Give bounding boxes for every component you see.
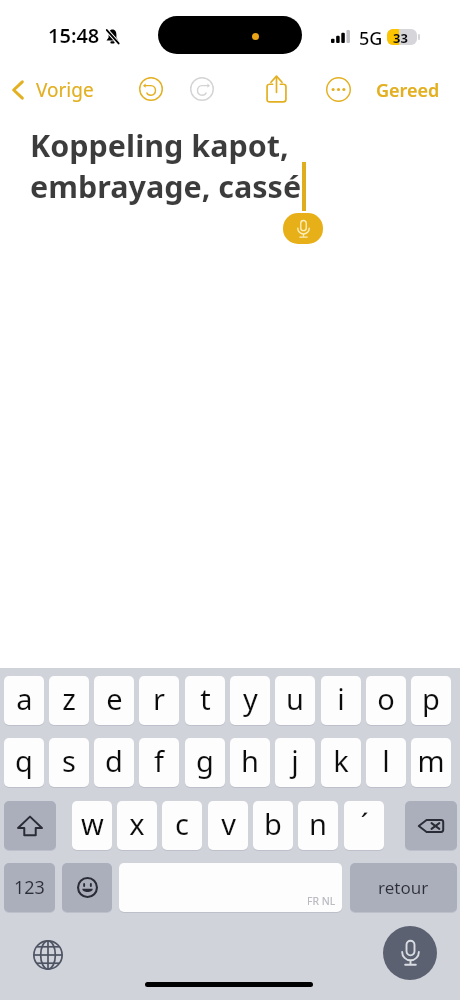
- button[interactable]: y: [230, 676, 270, 725]
- staticText: v: [221, 804, 236, 843]
- button[interactable]: Undo: [129, 67, 173, 111]
- staticText: 15:48: [48, 22, 100, 49]
- staticText: x: [129, 804, 145, 843]
- button[interactable]: o: [366, 676, 406, 725]
- staticText: l: [382, 741, 390, 780]
- button[interactable]: i: [321, 676, 361, 725]
- staticText: r: [153, 679, 165, 718]
- button[interactable]: Redo: [180, 67, 224, 111]
- button[interactable]: Backspace: [405, 801, 457, 850]
- button[interactable]: m: [411, 738, 451, 787]
- staticText: a: [16, 679, 33, 718]
- button[interactable]: 123: [4, 863, 55, 912]
- button[interactable]: t: [185, 676, 225, 725]
- button[interactable]: r: [139, 676, 179, 725]
- staticText: y: [243, 679, 258, 718]
- button[interactable]: z: [49, 676, 89, 725]
- staticText: 5G: [359, 26, 383, 51]
- staticText: e: [106, 679, 123, 718]
- staticText: retour: [378, 876, 429, 899]
- staticText: d: [105, 741, 123, 780]
- button[interactable]: s: [49, 738, 89, 787]
- staticText: s: [62, 741, 76, 780]
- staticText: j: [291, 741, 299, 780]
- button[interactable]: j: [275, 738, 315, 787]
- staticText: z: [62, 679, 76, 718]
- button[interactable]: e: [94, 676, 134, 725]
- button[interactable]: f: [139, 738, 179, 787]
- button[interactable]: retour: [350, 863, 457, 912]
- button[interactable]: k: [321, 738, 361, 787]
- staticText: w: [81, 804, 104, 843]
- staticText: embrayage, cassé: [30, 165, 302, 207]
- button[interactable]: l: [366, 738, 406, 787]
- staticText: ´: [360, 804, 369, 843]
- button[interactable]: Space: [119, 863, 342, 912]
- button[interactable]: Vorige: [0, 69, 104, 111]
- staticText: q: [15, 741, 33, 780]
- button[interactable]: h: [230, 738, 270, 787]
- staticText: f: [154, 741, 164, 780]
- button[interactable]: b: [253, 801, 293, 850]
- staticText: 123: [14, 875, 45, 900]
- staticText: k: [333, 741, 349, 780]
- button[interactable]: c: [162, 801, 202, 850]
- staticText: Gereed: [376, 78, 440, 103]
- staticText: u: [286, 679, 304, 718]
- button[interactable]: Dictate: [383, 926, 437, 980]
- button[interactable]: u: [275, 676, 315, 725]
- staticText: g: [196, 741, 214, 780]
- staticText: t: [200, 679, 211, 718]
- staticText: Koppeling kapot,: [30, 124, 289, 166]
- button[interactable]: g: [185, 738, 225, 787]
- staticText: c: [175, 804, 189, 843]
- staticText: Vorige: [36, 77, 94, 103]
- button[interactable]: Dictation: [283, 213, 323, 244]
- button[interactable]: n: [298, 801, 338, 850]
- staticText: b: [264, 804, 282, 843]
- button[interactable]: ´: [344, 801, 384, 850]
- button[interactable]: Change keyboard: [28, 935, 68, 975]
- button[interactable]: Shift: [4, 801, 56, 850]
- button[interactable]: d: [94, 738, 134, 787]
- button[interactable]: p: [411, 676, 451, 725]
- button[interactable]: Gereed: [368, 70, 448, 110]
- button[interactable]: x: [117, 801, 157, 850]
- button[interactable]: Emoji: [62, 863, 112, 912]
- staticText: p: [422, 679, 440, 718]
- button[interactable]: More options: [316, 67, 360, 111]
- staticText: n: [309, 804, 327, 843]
- staticText: 33: [393, 29, 408, 45]
- button[interactable]: v: [208, 801, 248, 850]
- staticText: h: [241, 741, 259, 780]
- staticText: m: [417, 741, 445, 780]
- button[interactable]: a: [4, 676, 44, 725]
- button[interactable]: q: [4, 738, 44, 787]
- button[interactable]: w: [72, 801, 112, 850]
- staticText: o: [377, 679, 395, 718]
- staticText: FR NL: [307, 894, 336, 908]
- staticText: i: [337, 679, 345, 718]
- button[interactable]: Share: [254, 67, 298, 111]
